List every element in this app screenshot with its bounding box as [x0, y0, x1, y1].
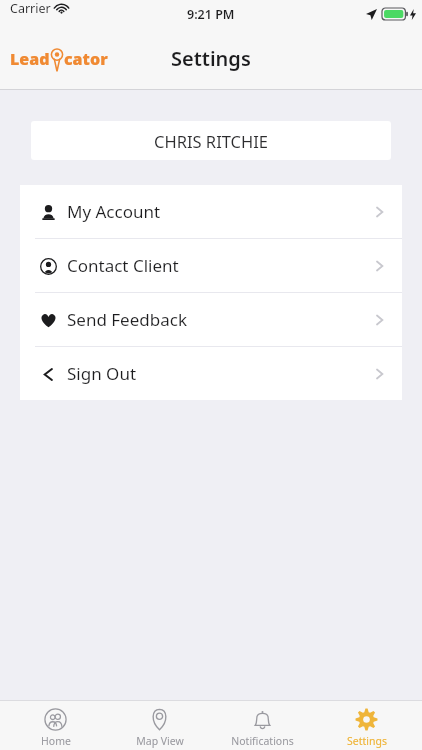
staticText: My Account	[67, 200, 161, 223]
button[interactable]: Sign Out	[20, 347, 402, 400]
staticText: Settings	[171, 45, 251, 72]
staticText: Map View	[136, 734, 184, 748]
staticText: CHRIS RITCHIE	[154, 130, 268, 152]
button[interactable]: Settings	[319, 704, 414, 748]
staticText: Settings	[347, 734, 387, 748]
staticText: Send Feedback	[67, 308, 187, 331]
button[interactable]: My Account	[20, 185, 402, 238]
button[interactable]: CHRIS RITCHIE	[31, 121, 391, 160]
staticText: Sign Out	[67, 362, 137, 385]
staticText: Home	[41, 734, 71, 748]
staticText: Notifications	[231, 734, 294, 748]
button[interactable]: Send Feedback	[20, 293, 402, 346]
button[interactable]: Notifications	[215, 704, 310, 748]
staticText: Lead	[10, 48, 50, 70]
staticText: cator	[64, 48, 108, 70]
staticText: 9:21 PM	[187, 6, 235, 23]
button[interactable]: Contact Client	[20, 239, 402, 292]
button[interactable]: Leadocator home	[10, 46, 108, 72]
button[interactable]: Home	[8, 704, 103, 748]
button[interactable]: Map View	[112, 704, 207, 748]
staticText: Carrier	[10, 0, 51, 17]
staticText: Contact Client	[67, 254, 179, 277]
